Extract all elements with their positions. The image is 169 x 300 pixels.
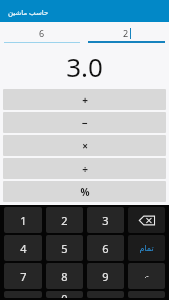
staticText: × [82,139,88,153]
button[interactable]: 6 [87,235,124,261]
staticText: 9 [102,269,109,284]
staticText: + [82,93,88,107]
button[interactable]: ÷ [3,158,166,179]
button[interactable]: − [3,112,166,133]
button[interactable]: 3 [87,207,124,233]
button[interactable]: 4 [4,235,42,261]
staticText: 6 [102,241,109,256]
button[interactable]: .- [128,263,165,289]
button[interactable]: 5 [46,235,83,261]
button[interactable]: 8 [46,263,83,289]
button[interactable]: 1 [4,207,42,233]
button[interactable]: 0 [46,291,83,298]
button[interactable]: 7 [4,263,42,289]
staticText: − [82,116,88,130]
staticText: 4 [20,241,27,256]
staticText: 7 [20,269,27,284]
button[interactable]: 2 [84,22,169,43]
button[interactable]: Backspace [128,207,165,233]
staticText: ÷ [82,162,88,176]
staticText: 0 [61,291,68,298]
staticText: 3 [102,213,109,228]
staticText: 6 [39,27,45,39]
staticText: تمام [139,244,154,253]
button[interactable]: × [3,135,166,156]
button[interactable]: تمام [128,235,165,261]
button[interactable]: 9 [87,263,124,289]
button[interactable]: 2 [46,207,83,233]
staticText: 8 [61,269,68,284]
staticText: % [80,185,90,199]
staticText: حاسب ماشين [8,8,49,18]
button[interactable]: % [3,181,166,202]
staticText: .- [144,271,149,281]
staticText: 2 [123,27,129,39]
staticText: 1 [20,213,27,228]
staticText: 2 [61,213,68,228]
staticText: 3.0 [66,49,103,84]
button[interactable]: + [3,89,166,110]
button[interactable]: 6 [0,22,84,43]
staticText: 5 [61,241,68,256]
